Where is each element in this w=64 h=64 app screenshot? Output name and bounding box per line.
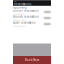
button[interactable]: Dinner reservation (13, 9, 51, 15)
staticText: View (46, 11, 49, 13)
button[interactable]: Sushi reservation (13, 21, 51, 27)
staticText: 9:41 (14, 0, 17, 2)
button[interactable]: Brunch reservation (13, 15, 51, 21)
staticText: Sunday at 6:45 PM (13, 25, 25, 27)
staticText: View (46, 17, 49, 19)
staticText: Today at 7:30 PM (13, 13, 24, 15)
staticText: View (46, 23, 49, 25)
staticText: Reservations (14, 2, 31, 6)
staticText: Upcoming (13, 6, 27, 9)
staticText: Saturday 11:00 AM (13, 19, 26, 21)
staticText: Dinner reservation (13, 9, 39, 12)
staticText: Sushi reservation (13, 21, 36, 24)
staticText: Brunch reservation (13, 15, 39, 18)
staticText: Book Now (25, 58, 39, 62)
